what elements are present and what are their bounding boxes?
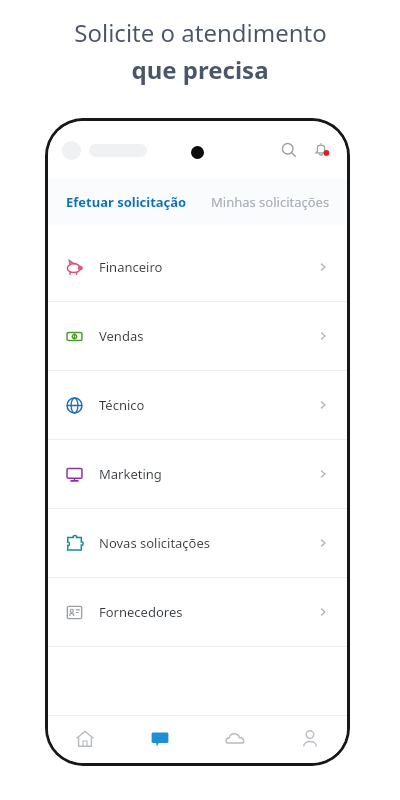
staticText: que precisa bbox=[131, 53, 269, 86]
staticText: Solicite o atendimento bbox=[74, 16, 327, 49]
button[interactable]: Minhas solicitações bbox=[211, 187, 330, 217]
button[interactable]: Notifications bbox=[307, 136, 335, 164]
button[interactable]: Messages bbox=[122, 715, 197, 763]
staticText: Financeiro bbox=[99, 258, 163, 276]
staticText: Fornecedores bbox=[99, 603, 183, 621]
staticText: Novas solicitações bbox=[99, 534, 211, 552]
staticText: Técnico bbox=[99, 396, 145, 414]
button[interactable]: Fornecedores bbox=[48, 578, 347, 646]
button[interactable]: Profile bbox=[272, 715, 347, 763]
staticText: Vendas bbox=[99, 327, 144, 345]
button[interactable]: Técnico bbox=[48, 371, 347, 439]
staticText: Minhas solicitações bbox=[211, 193, 330, 211]
button[interactable]: Marketing bbox=[48, 440, 347, 508]
button[interactable]: Home bbox=[48, 715, 122, 763]
staticText: Efetuar solicitação bbox=[66, 193, 187, 211]
button[interactable]: Cloud bbox=[197, 715, 272, 763]
button[interactable]: Novas solicitações bbox=[48, 509, 347, 577]
button[interactable]: Efetuar solicitação bbox=[66, 187, 187, 217]
button[interactable]: Vendas bbox=[48, 302, 347, 370]
button[interactable]: Search bbox=[275, 136, 303, 164]
button[interactable]: Financeiro bbox=[48, 233, 347, 301]
staticText: Marketing bbox=[99, 465, 162, 483]
